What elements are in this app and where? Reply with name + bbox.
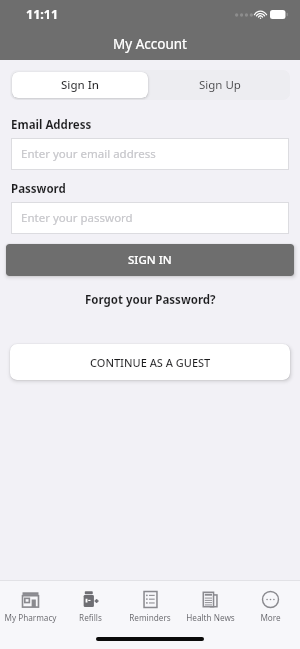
staticText: Sign Up <box>199 77 241 93</box>
button[interactable]: More <box>240 581 300 629</box>
staticText: Forgot your Password? <box>85 292 216 308</box>
staticText: SIGN IN <box>128 252 172 268</box>
staticText: My Pharmacy <box>4 612 57 623</box>
staticText: Password <box>11 181 66 197</box>
button[interactable]: Sign Up <box>150 70 290 100</box>
staticText: Health News <box>186 612 235 623</box>
staticText: Enter your email address <box>21 146 156 162</box>
button[interactable]: Enter your email address <box>11 138 289 170</box>
button[interactable]: Sign In <box>12 72 148 98</box>
button[interactable]: Reminders <box>120 581 180 629</box>
button[interactable]: My Pharmacy <box>0 581 60 629</box>
staticText: Enter your password <box>21 210 133 226</box>
staticText: Email Address <box>11 117 92 133</box>
staticText: CONTINUE AS A GUEST <box>90 355 211 370</box>
staticText: Reminders <box>129 612 171 623</box>
staticText: Refills <box>79 612 102 623</box>
button[interactable]: Enter your password <box>11 202 289 234</box>
staticText: Sign In <box>61 77 100 93</box>
staticText: My Account <box>113 35 187 53</box>
staticText: More <box>260 612 281 623</box>
button[interactable]: CONTINUE AS A GUEST <box>10 344 290 380</box>
button[interactable]: SIGN IN <box>6 244 294 276</box>
button[interactable]: Health News <box>180 581 240 629</box>
staticText: 11:11 <box>26 6 59 23</box>
button[interactable]: Refills <box>60 581 120 629</box>
